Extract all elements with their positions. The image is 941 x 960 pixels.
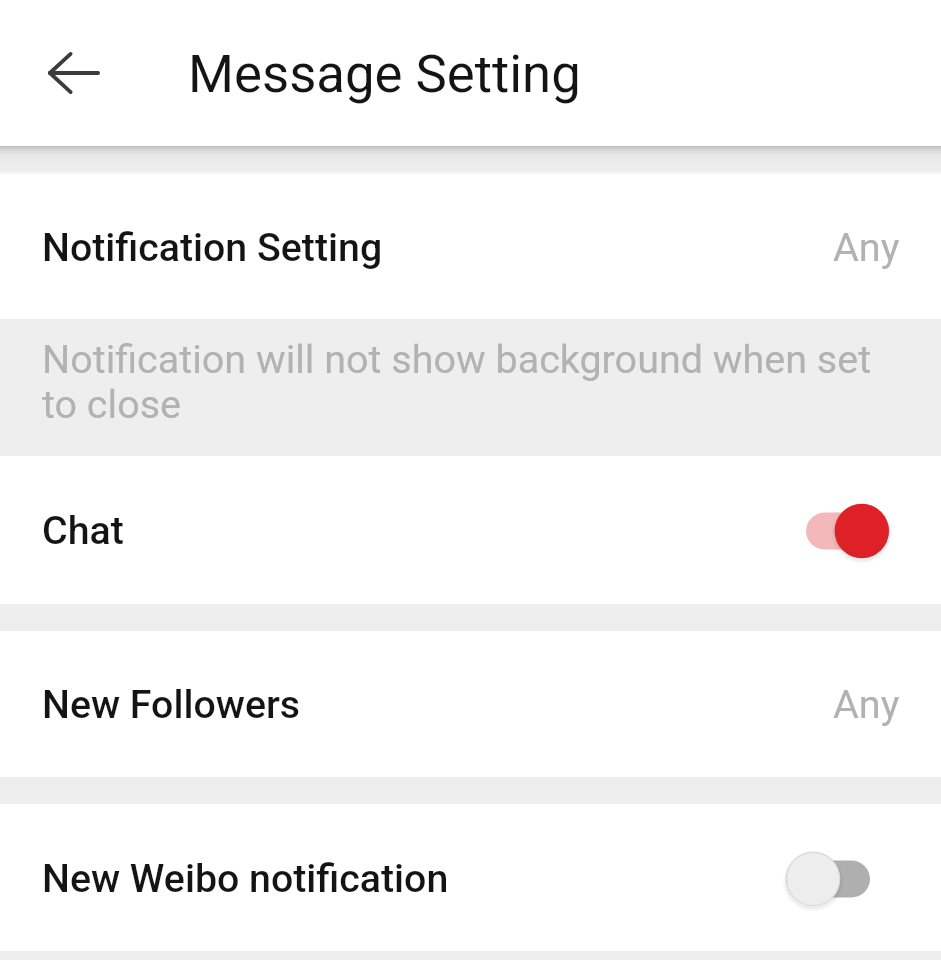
button[interactable]: Chat bbox=[0, 456, 941, 604]
button[interactable]: New Weibo notification bbox=[0, 804, 941, 951]
staticText: Any bbox=[833, 224, 900, 270]
button[interactable]: Toggle off bbox=[786, 850, 870, 908]
staticText: New Weibo notification bbox=[42, 856, 449, 902]
staticText: Notification Setting bbox=[42, 225, 383, 271]
staticText: New Followers bbox=[42, 682, 301, 728]
button[interactable]: Notification Setting bbox=[0, 175, 941, 319]
staticText: Notification will not show background wh… bbox=[42, 338, 901, 428]
staticText: Message Setting bbox=[188, 43, 581, 105]
button[interactable]: Back bbox=[0, 0, 146, 146]
staticText: Any bbox=[833, 681, 900, 727]
button[interactable]: New Followers bbox=[0, 631, 941, 777]
staticText: Chat bbox=[42, 508, 124, 554]
button[interactable]: Toggle on bbox=[806, 502, 889, 560]
